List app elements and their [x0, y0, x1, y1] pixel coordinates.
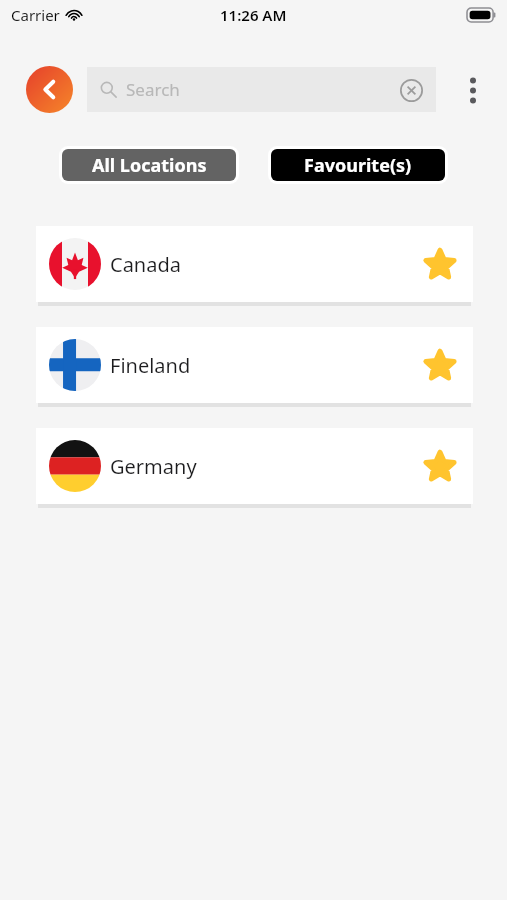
- button[interactable]: Favourite Fineland: [418, 343, 462, 387]
- button[interactable]: Favourite(s): [271, 149, 445, 181]
- staticText: Favourite(s): [304, 153, 412, 178]
- button[interactable]: Favourite Canada: [418, 242, 462, 286]
- button[interactable]: Search: [87, 67, 436, 112]
- button[interactable]: All Locations: [62, 149, 236, 181]
- staticText: Search: [126, 78, 180, 101]
- staticText: Germany: [110, 453, 197, 480]
- button[interactable]: Canada: [36, 226, 473, 302]
- button[interactable]: Back: [26, 66, 73, 113]
- button[interactable]: Fineland: [36, 327, 473, 403]
- staticText: Fineland: [110, 352, 191, 379]
- staticText: Carrier: [11, 5, 60, 25]
- button[interactable]: More options: [452, 69, 494, 111]
- button[interactable]: Clear: [395, 74, 427, 106]
- staticText: Canada: [110, 251, 181, 278]
- button[interactable]: Germany: [36, 428, 473, 504]
- staticText: All Locations: [92, 153, 207, 178]
- button[interactable]: Favourite Germany: [418, 444, 462, 488]
- staticText: 11:26 AM: [220, 5, 287, 25]
